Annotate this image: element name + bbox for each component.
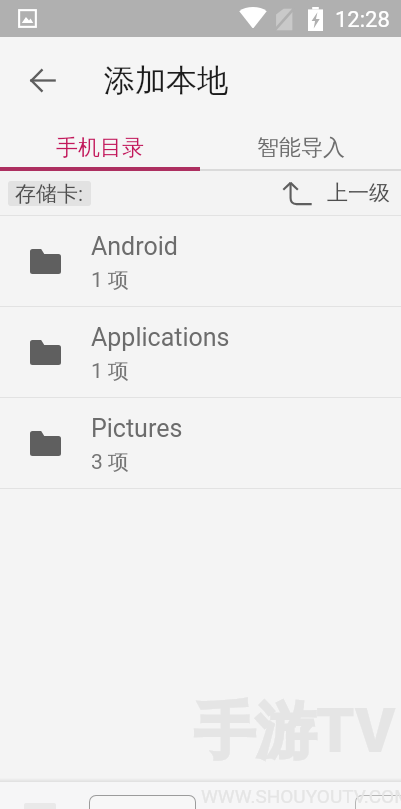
staticText: 存储卡: — [15, 181, 84, 206]
button[interactable]: Back — [21, 59, 63, 101]
staticText: 1 项 — [91, 267, 130, 293]
staticText: 3 项 — [91, 449, 130, 475]
staticText: 1 项 — [91, 358, 130, 384]
button[interactable]: Cancel — [89, 795, 196, 809]
staticText: Pictures — [91, 414, 183, 443]
staticText: Android — [91, 232, 178, 261]
staticText: WWW.SHOUYOUTV.COM — [201, 785, 401, 807]
staticText: 上一级 — [327, 180, 390, 206]
staticText: 手机目录 — [56, 134, 144, 162]
button[interactable]: 智能导入 — [200, 123, 401, 167]
staticText: Applications — [91, 323, 230, 352]
button[interactable]: Pictures — [0, 398, 401, 488]
button[interactable]: Applications — [0, 307, 401, 397]
staticText: 12:28 — [335, 7, 390, 33]
button[interactable]: 手机目录 — [0, 123, 200, 167]
button[interactable]: 存储卡: — [8, 181, 91, 206]
staticText: 手游TV — [194, 693, 396, 770]
staticText: 智能导入 — [257, 134, 345, 162]
staticText: 添加本地 — [104, 61, 228, 100]
button[interactable]: Confirm — [355, 795, 401, 809]
button[interactable]: Android — [0, 216, 401, 306]
button[interactable]: 上一级 — [280, 180, 390, 206]
